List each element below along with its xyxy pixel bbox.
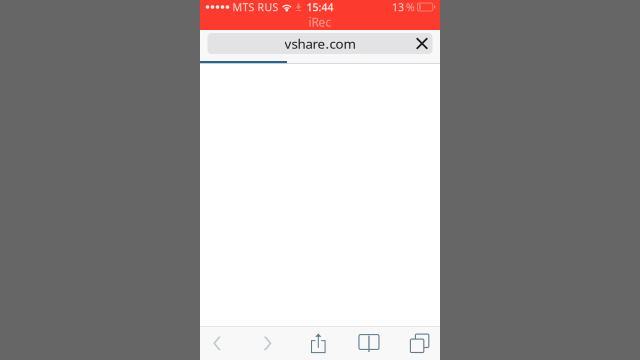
button[interactable]: Tabs	[403, 327, 437, 360]
button[interactable]: Back	[200, 327, 234, 360]
staticText: vshare.com	[284, 35, 355, 52]
staticText: 15:44	[306, 0, 333, 14]
button[interactable]: Share	[301, 327, 335, 360]
staticText: 13	[392, 0, 404, 14]
button[interactable]: vshare.com	[207, 33, 432, 54]
button[interactable]: Bookmarks	[352, 327, 386, 360]
staticText: iRec	[308, 14, 331, 30]
staticText: %	[406, 0, 415, 14]
staticText: MTS RUS	[232, 0, 278, 14]
button[interactable]: Forward	[251, 327, 285, 360]
button[interactable]: Stop loading	[411, 33, 432, 54]
